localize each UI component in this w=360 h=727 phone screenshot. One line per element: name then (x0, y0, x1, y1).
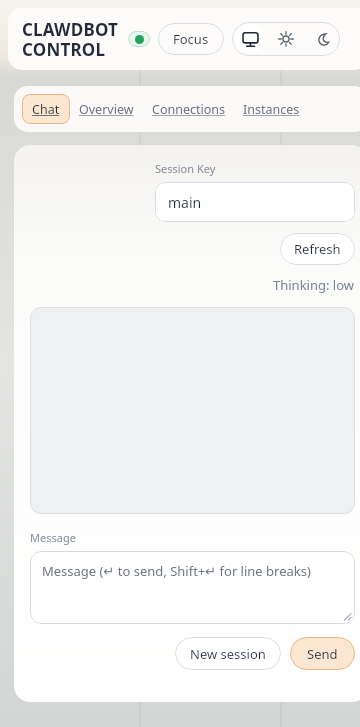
button[interactable]: Send (290, 637, 355, 670)
staticText: CLAWDBOT CONTROL (22, 18, 119, 61)
button[interactable]: New session (175, 637, 281, 670)
button[interactable]: Chat (22, 94, 70, 124)
button[interactable]: main (155, 182, 355, 222)
button[interactable]: Light theme (268, 22, 304, 56)
button[interactable]: Connections (143, 94, 234, 124)
staticText: main (168, 193, 202, 212)
staticText: Session Key (155, 161, 216, 176)
button[interactable]: Overview (70, 94, 143, 124)
staticText: Connections (152, 101, 225, 118)
staticText: Thinking: low (273, 276, 355, 294)
staticText: Overview (79, 101, 134, 118)
staticText: Instances (243, 101, 300, 118)
button[interactable]: Message (↵ to send, Shift+↵ for line bre… (30, 551, 355, 624)
button[interactable]: Instances (234, 94, 309, 124)
staticText: Chat (32, 101, 60, 118)
staticText: New session (190, 645, 266, 663)
button[interactable]: Dark theme (304, 22, 340, 56)
staticText: Refresh (294, 240, 341, 258)
staticText: Message (↵ to send, Shift+↵ for line bre… (42, 562, 311, 580)
staticText: Send (307, 645, 338, 663)
button[interactable]: Connection status: connected (128, 31, 150, 47)
button[interactable]: Focus (158, 23, 224, 55)
staticText: Focus (173, 30, 209, 48)
button[interactable]: Use system theme (232, 22, 268, 56)
button[interactable]: Refresh (280, 233, 355, 265)
staticText: Message (30, 530, 76, 545)
